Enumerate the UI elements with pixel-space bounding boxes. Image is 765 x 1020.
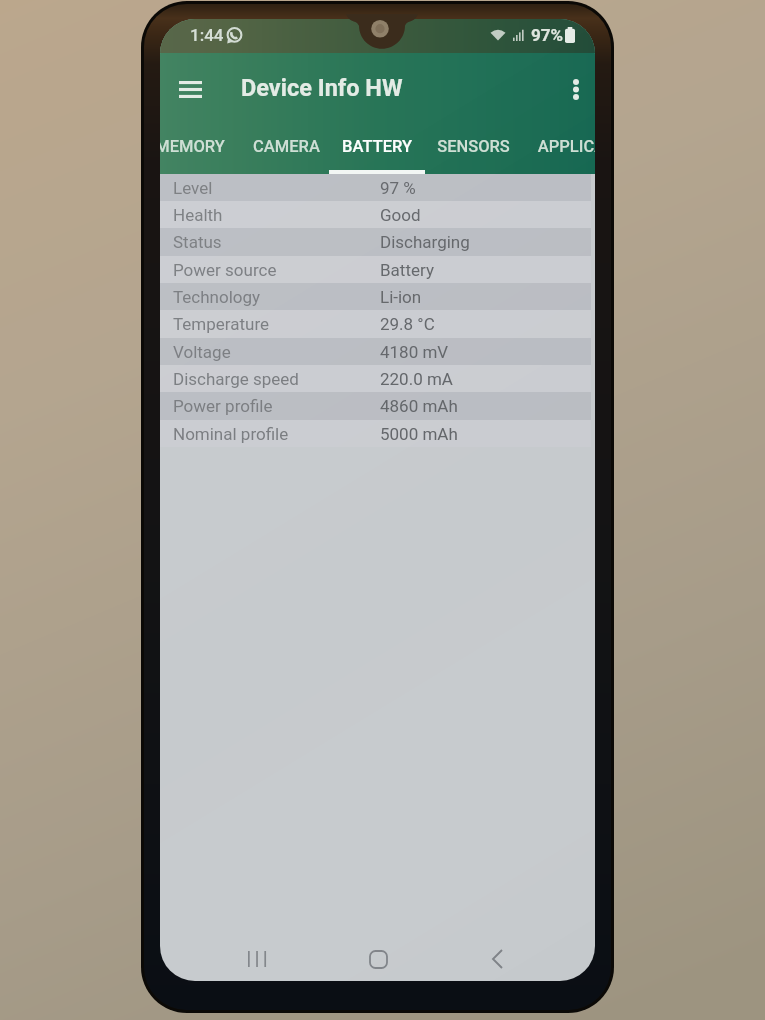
button[interactable]: Health (160, 201, 595, 228)
staticText: 29.8 °C (380, 314, 435, 334)
staticText: Power profile (173, 396, 380, 416)
button[interactable]: More options (554, 67, 595, 111)
staticText: 5000 mAh (380, 424, 458, 444)
button[interactable]: Back (471, 937, 523, 981)
button[interactable]: Home (352, 937, 404, 981)
button[interactable]: Open navigation drawer (167, 66, 213, 112)
button[interactable]: Level (160, 174, 595, 201)
staticText: 4860 mAh (380, 396, 458, 416)
staticText: 97 % (380, 178, 416, 198)
staticText: Health (173, 205, 380, 225)
staticText: Discharge speed (173, 369, 380, 389)
button[interactable]: APPLICATIONS (536, 125, 595, 174)
staticText: BATTERY (342, 137, 412, 156)
button[interactable]: SENSORS (425, 125, 521, 174)
button[interactable]: CAMERA (238, 125, 334, 174)
staticText: Li-ion (380, 287, 422, 307)
staticText: Power source (173, 260, 380, 280)
staticText: 220.0 mA (380, 369, 453, 389)
button[interactable]: MEMORY (160, 125, 238, 174)
button[interactable]: Technology (160, 283, 595, 310)
staticText: 4180 mV (380, 342, 449, 362)
staticText: Good (380, 205, 421, 225)
button[interactable]: BATTERY (329, 125, 425, 174)
button[interactable]: Recent apps (231, 937, 283, 981)
staticText: SENSORS (437, 137, 510, 156)
staticText: CAMERA (253, 137, 320, 156)
staticText: Voltage (173, 342, 380, 362)
staticText: Discharging (380, 232, 470, 252)
button[interactable]: Nominal profile (160, 420, 595, 447)
button[interactable]: Voltage (160, 338, 595, 365)
button[interactable]: Temperature (160, 310, 595, 338)
staticText: MEMORY (160, 137, 225, 156)
staticText: Level (173, 178, 380, 198)
button[interactable]: Status (160, 228, 595, 256)
staticText: Device Info HW (241, 74, 403, 102)
staticText: Technology (173, 287, 380, 307)
staticText: Nominal profile (173, 424, 380, 444)
staticText: APPLICATIONS (536, 137, 595, 156)
staticText: Status (173, 232, 380, 252)
staticText: 97% (531, 25, 564, 45)
staticText: Temperature (173, 314, 380, 334)
button[interactable]: Power profile (160, 392, 595, 420)
button[interactable]: Power source (160, 256, 595, 283)
staticText: Battery (380, 260, 434, 280)
staticText: 1:44 (190, 25, 224, 45)
button[interactable]: Discharge speed (160, 365, 595, 392)
